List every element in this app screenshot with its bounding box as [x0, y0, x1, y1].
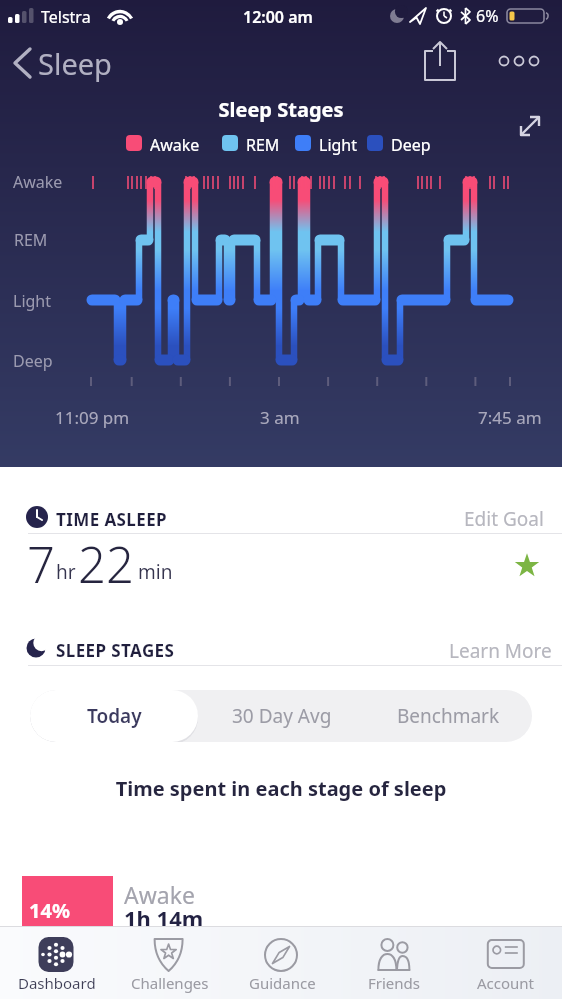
button[interactable]: 30 Day Avg: [198, 690, 365, 742]
staticText: Deep: [13, 350, 53, 372]
staticText: Awake: [150, 134, 200, 156]
staticText: TIME ASLEEP: [56, 508, 168, 531]
staticText: Guidance: [249, 973, 316, 993]
button[interactable]: Friends: [338, 926, 450, 999]
button[interactable]: Account: [450, 926, 562, 999]
button[interactable]: Edit Goal: [440, 500, 550, 530]
staticText: Time spent in each stage of sleep: [0, 775, 562, 802]
staticText: 1h 14m: [124, 903, 204, 933]
staticText: 22: [78, 531, 134, 598]
staticText: 11:09 pm: [55, 406, 130, 429]
button[interactable]: Benchmark: [365, 690, 532, 742]
staticText: 6%: [476, 5, 499, 27]
staticText: Benchmark: [397, 703, 500, 729]
button[interactable]: Sleep: [8, 42, 118, 84]
staticText: Deep: [391, 134, 431, 156]
staticText: Sleep Stages: [0, 96, 562, 123]
button[interactable]: [496, 44, 546, 78]
staticText: REM: [14, 229, 48, 251]
staticText: min: [138, 559, 173, 585]
staticText: Friends: [368, 973, 420, 993]
staticText: 7: [27, 531, 55, 598]
staticText: Light: [13, 290, 52, 312]
staticText: Account: [477, 973, 535, 993]
staticText: Today: [87, 703, 142, 729]
staticText: Challenges: [131, 973, 209, 993]
staticText: Learn More: [449, 638, 552, 664]
staticText: 3 am: [260, 406, 300, 429]
staticText: Dashboard: [18, 973, 96, 993]
button[interactable]: Learn More: [430, 632, 550, 662]
staticText: 14%: [29, 897, 70, 924]
button[interactable]: Dashboard: [0, 926, 113, 999]
button[interactable]: Today: [30, 690, 198, 742]
staticText: SLEEP STAGES: [56, 639, 175, 662]
staticText: Awake: [124, 879, 195, 910]
button[interactable]: [418, 38, 464, 84]
staticText: Edit Goal: [464, 506, 544, 532]
staticText: Telstra: [41, 6, 91, 28]
staticText: Light: [319, 134, 358, 156]
staticText: 30 Day Avg: [232, 703, 332, 729]
staticText: Sleep: [38, 44, 112, 83]
staticText: REM: [246, 134, 280, 156]
button[interactable]: Challenges: [113, 926, 226, 999]
staticText: Awake: [13, 171, 63, 193]
staticText: 12:00 am: [243, 6, 313, 28]
staticText: 7:45 am: [478, 406, 542, 429]
staticText: hr: [56, 559, 76, 585]
button[interactable]: Guidance: [226, 926, 338, 999]
button[interactable]: [510, 108, 550, 148]
